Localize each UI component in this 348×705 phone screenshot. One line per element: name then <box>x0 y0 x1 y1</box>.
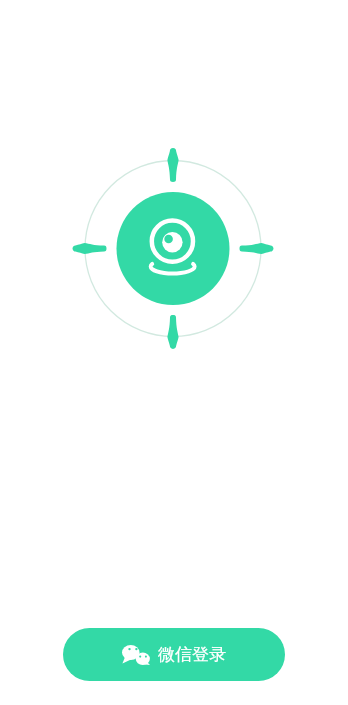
other: Camera <box>0 0 348 705</box>
staticText: 微信登录 <box>158 644 226 665</box>
button[interactable]: 微信登录 <box>63 628 285 681</box>
